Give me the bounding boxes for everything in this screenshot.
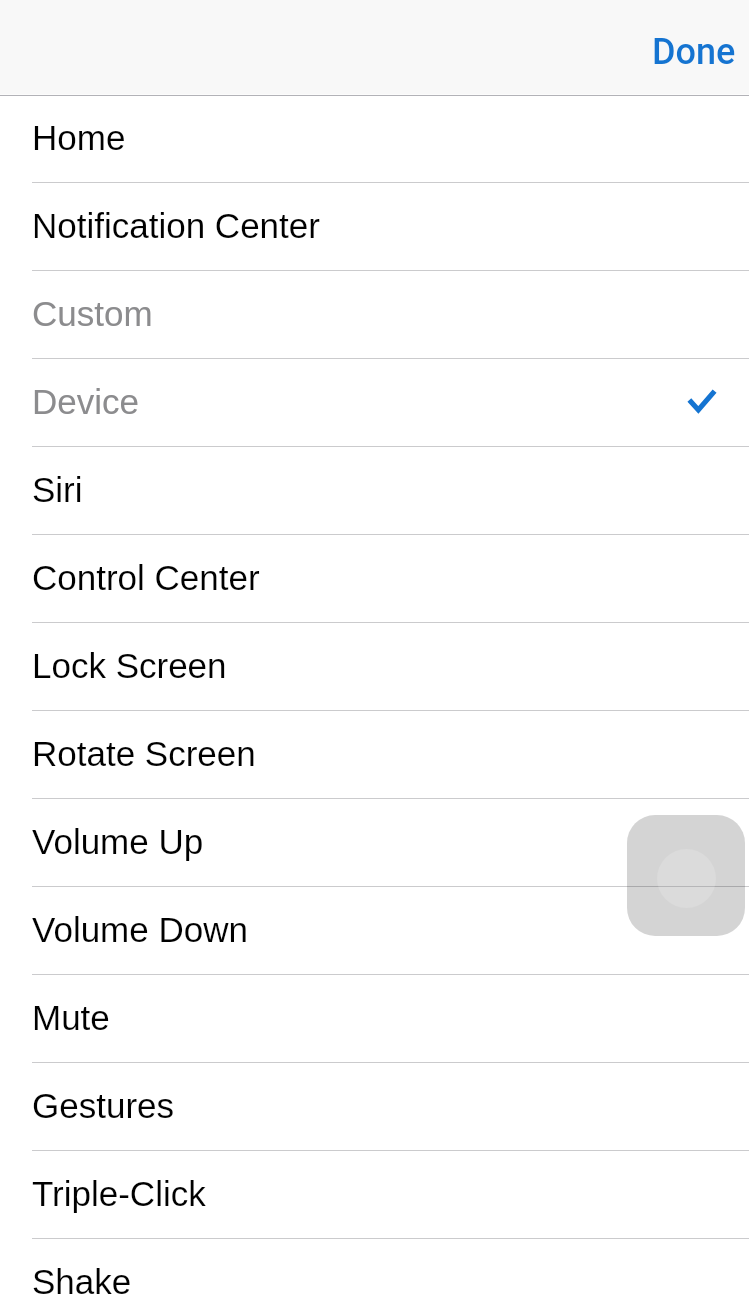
button[interactable]: Device [0, 359, 749, 446]
staticText: Device [32, 382, 139, 421]
button[interactable]: Control Center [0, 535, 749, 622]
button[interactable]: Notification Center [0, 183, 749, 270]
button[interactable]: Lock Screen [0, 623, 749, 710]
button[interactable]: Rotate Screen [0, 711, 749, 798]
button[interactable]: Home [0, 96, 749, 182]
staticText: Notification Center [32, 206, 320, 245]
staticText: Done [652, 31, 736, 73]
staticText: Custom [32, 294, 153, 333]
button[interactable]: Volume Up [0, 799, 749, 886]
staticText: Shake [32, 1262, 132, 1301]
staticText: Lock Screen [32, 646, 227, 685]
button[interactable]: Siri [0, 447, 749, 534]
staticText: Control Center [32, 558, 260, 597]
staticText: Mute [32, 998, 110, 1037]
button[interactable]: Shake [0, 1239, 749, 1301]
button[interactable]: Mute [0, 975, 749, 1062]
staticText: Rotate Screen [32, 734, 256, 773]
button[interactable]: Custom [0, 271, 749, 358]
button[interactable]: Done [612, 0, 749, 94]
staticText: Volume Up [32, 822, 204, 861]
button[interactable]: Triple-Click [0, 1151, 749, 1238]
staticText: Gestures [32, 1086, 174, 1125]
staticText: Siri [32, 470, 83, 509]
staticText: Triple-Click [32, 1174, 206, 1213]
other: Selected [688, 390, 716, 413]
button[interactable]: Volume Down [0, 887, 749, 974]
button[interactable]: Gestures [0, 1063, 749, 1150]
button[interactable]: AssistiveTouch [627, 815, 745, 936]
staticText: Volume Down [32, 910, 248, 949]
staticText: Home [32, 118, 126, 157]
